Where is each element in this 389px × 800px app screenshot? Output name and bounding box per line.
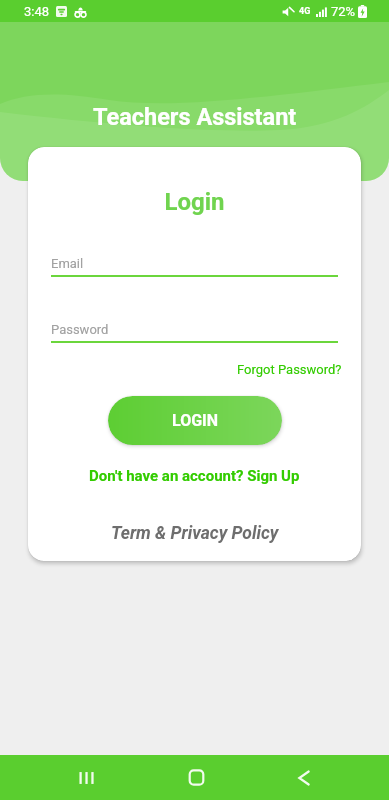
staticText: 3:48 xyxy=(24,4,50,19)
staticText: Email xyxy=(51,256,84,271)
staticText: 4G xyxy=(299,6,311,17)
staticText: Password xyxy=(51,322,109,337)
button[interactable]: Back xyxy=(274,755,334,800)
staticText: Teachers Assistant xyxy=(93,103,297,131)
button[interactable]: LOGIN xyxy=(108,396,282,445)
staticText: 72% xyxy=(331,4,356,19)
staticText: LOGIN xyxy=(172,411,219,430)
button[interactable]: Home xyxy=(166,755,226,800)
staticText: Login xyxy=(28,188,361,216)
button[interactable]: Don't have an account? Sign Up xyxy=(89,467,300,485)
button[interactable]: Recent apps xyxy=(57,755,117,800)
button[interactable]: Forgot Password? xyxy=(237,362,342,377)
button[interactable]: Term & Privacy Policy xyxy=(111,523,279,544)
